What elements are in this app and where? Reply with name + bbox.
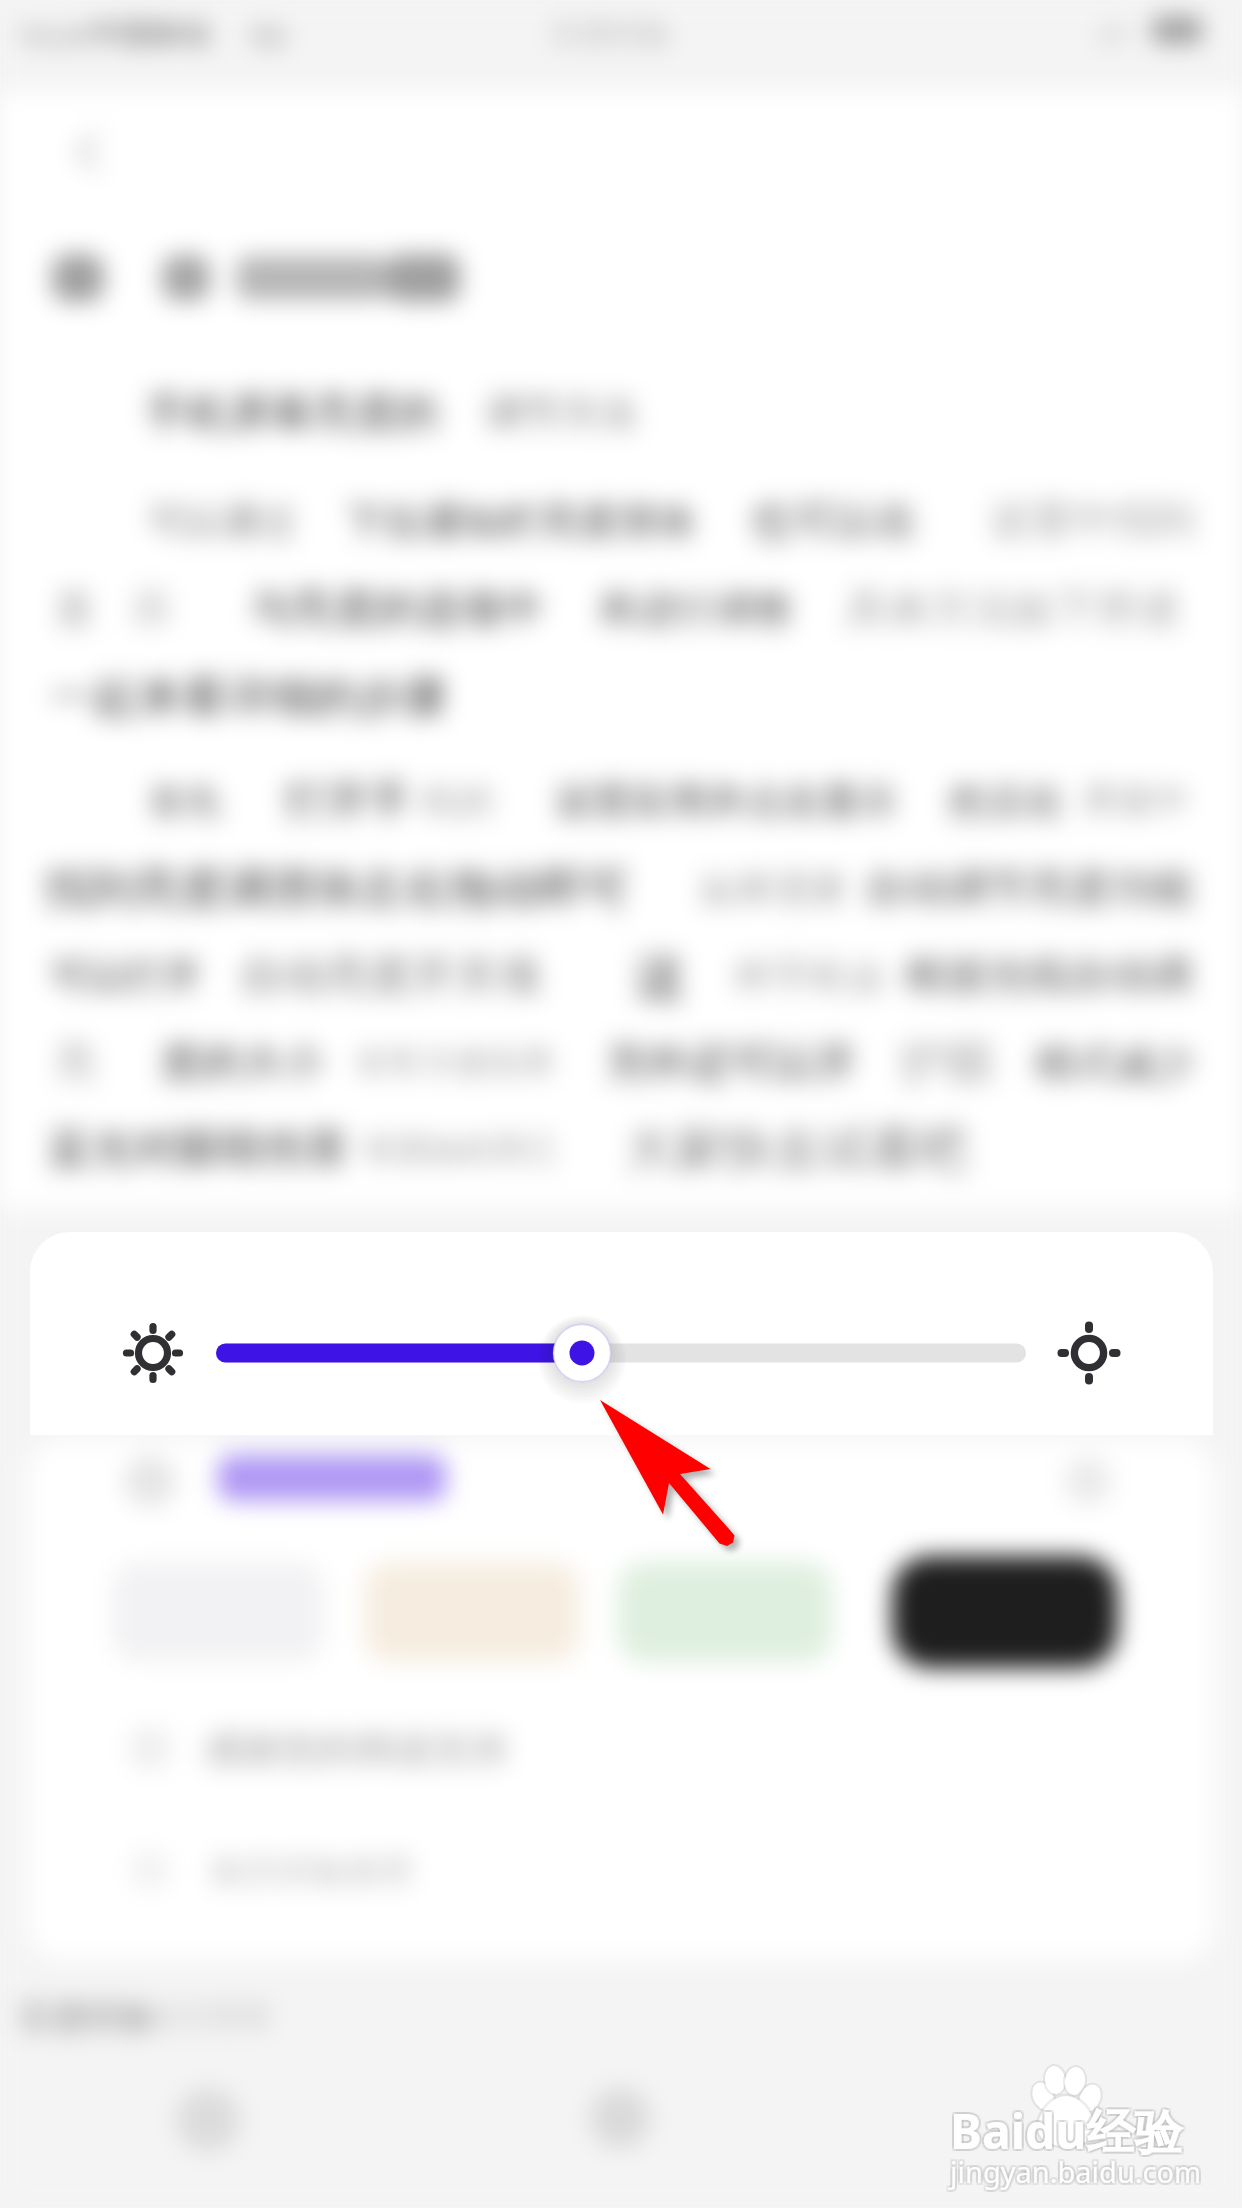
staticText: 然后在 [948, 777, 1065, 826]
staticText: jingyan.baidu.com [950, 2154, 1202, 2193]
staticText: Baidu经验 [950, 2098, 1183, 2164]
staticText: 中国移动 [90, 15, 210, 53]
staticText: 这 [634, 944, 686, 1010]
staticText: 蓝光对眼睛伤害 [48, 1122, 349, 1176]
staticText: jingyan.baidu.com [952, 2150, 1204, 2189]
button[interactable]: Decrease brightness [108, 1308, 198, 1398]
staticText: Baidu经验 [950, 2096, 1183, 2162]
button[interactable]: Brightness slider [176, 1303, 1076, 1403]
staticText: Baidu经验 [952, 2096, 1185, 2162]
staticText: jingyan.baidu.com [948, 2152, 1200, 2191]
staticText: 自动调节亮度功能 [865, 863, 1193, 915]
staticText: 与亮度的选项中 [250, 583, 544, 636]
staticText: 手机屏幕亮度的 [145, 387, 439, 440]
staticText: jingyan.baidu.com [950, 2152, 1202, 2191]
staticText: 程度如此而已 [365, 1129, 557, 1169]
staticText: 具体方法如下所述 [845, 583, 1181, 636]
staticText: 根据光线自动调 [905, 950, 1192, 1002]
staticText: 也可以在 [750, 495, 918, 548]
staticText: 10:24 [16, 16, 88, 54]
staticText: 亮 [55, 1037, 97, 1090]
staticText: Baidu经验 [950, 2100, 1183, 2166]
staticText: jingyan.baidu.com [952, 2152, 1204, 2191]
staticText: 百度经验 [18, 1996, 154, 2039]
staticText: 样手机会 [735, 952, 887, 1000]
staticText: jingyan.baidu.com [948, 2150, 1200, 2189]
staticText: 再进行调整 [598, 585, 793, 634]
staticText: Baidu经验 [948, 2100, 1181, 2166]
staticText: 设置中找到 [990, 495, 1195, 547]
staticText: 如果需要 [700, 866, 848, 913]
staticText: jingyan.baidu.com [952, 2154, 1204, 2193]
staticText: 度的大小 [160, 1037, 324, 1089]
staticText: 设置应用并点击显示 [555, 777, 897, 825]
staticText: 大家快去试看吧 [625, 1119, 968, 1181]
staticText: 下拉通知栏亮度滑块 [345, 497, 696, 546]
staticText: 护眼 [900, 1033, 996, 1093]
staticText: 感谢您的阅读支持 [204, 1725, 508, 1773]
staticText: 一起来看详细的步骤 [50, 670, 446, 725]
staticText: 自动亮度开关项 [240, 949, 541, 1003]
staticText: 首先 [148, 778, 222, 825]
staticText: 可以打开 [50, 952, 202, 1000]
staticText: 界面中 [1082, 778, 1190, 823]
staticText: 另外还可以开 [605, 1037, 857, 1090]
staticText: 百度经验 [550, 15, 670, 53]
staticText: 可以通过 [148, 498, 296, 545]
staticText: 示 [130, 583, 172, 636]
staticText: 5G [250, 16, 287, 54]
staticText: 显 [54, 584, 94, 634]
staticText: Baidu经验 [948, 2096, 1181, 2162]
staticText: 调节方法 [485, 389, 637, 437]
staticText: jingyan.baidu.com [950, 2150, 1202, 2189]
staticText: 打开手 [285, 775, 411, 828]
staticText: Baidu经验 [948, 2098, 1181, 2164]
button[interactable]: Increase brightness [1044, 1308, 1134, 1398]
staticText: 相关经验推荐 [210, 1850, 414, 1893]
staticText: 模式减少 [1035, 1038, 1195, 1088]
staticText: 找到亮度调滑块左右拖动即可 [45, 861, 630, 918]
staticText: Baidu经验 [952, 2098, 1185, 2164]
staticText: Baidu经验 [952, 2100, 1185, 2166]
staticText: jingyan.baidu.com [948, 2154, 1200, 2193]
staticText: 非常方便实用 [355, 1042, 553, 1084]
staticText: 机的 [422, 778, 494, 823]
